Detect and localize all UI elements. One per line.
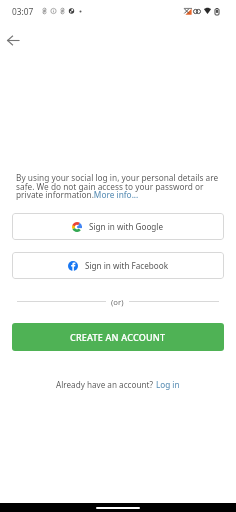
button[interactable]: CREATE AN ACCOUNT (12, 323, 224, 351)
button[interactable]: Log in (156, 379, 180, 390)
staticText: 03:07 (12, 6, 34, 17)
button[interactable]: Sign in with Google (12, 213, 224, 240)
staticText: Already have an account? (56, 379, 156, 390)
staticText: private information.More info... (16, 189, 139, 200)
staticText: safe. We do not gain access to your pass… (16, 181, 204, 192)
button[interactable]: Sign in with Facebook (12, 252, 224, 279)
staticText: Sign in with Facebook (85, 260, 169, 271)
button[interactable]: Back (0, 24, 29, 57)
staticText: Sign in with Google (89, 221, 164, 232)
staticText: (or) (111, 297, 124, 307)
staticText: By using your social log in, your person… (16, 172, 219, 183)
staticText: Log in (156, 379, 180, 390)
staticText: CREATE AN ACCOUNT (70, 331, 166, 343)
